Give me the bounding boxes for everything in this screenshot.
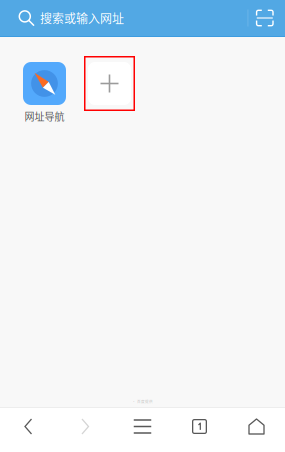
button[interactable]: Tabs	[171, 408, 228, 445]
button[interactable]: Back	[0, 408, 57, 445]
button[interactable]: 网址导航	[23, 56, 66, 123]
button[interactable]: Forward	[57, 408, 114, 445]
button[interactable]: 搜索或输入网址	[0, 0, 285, 37]
button[interactable]: Home	[228, 408, 285, 445]
staticText: 搜索或输入网址	[40, 9, 124, 27]
button[interactable]: Menu	[114, 408, 171, 445]
staticText: · 百度提供	[132, 399, 153, 404]
staticText: 网址导航	[24, 109, 64, 123]
button[interactable]	[84, 56, 135, 111]
